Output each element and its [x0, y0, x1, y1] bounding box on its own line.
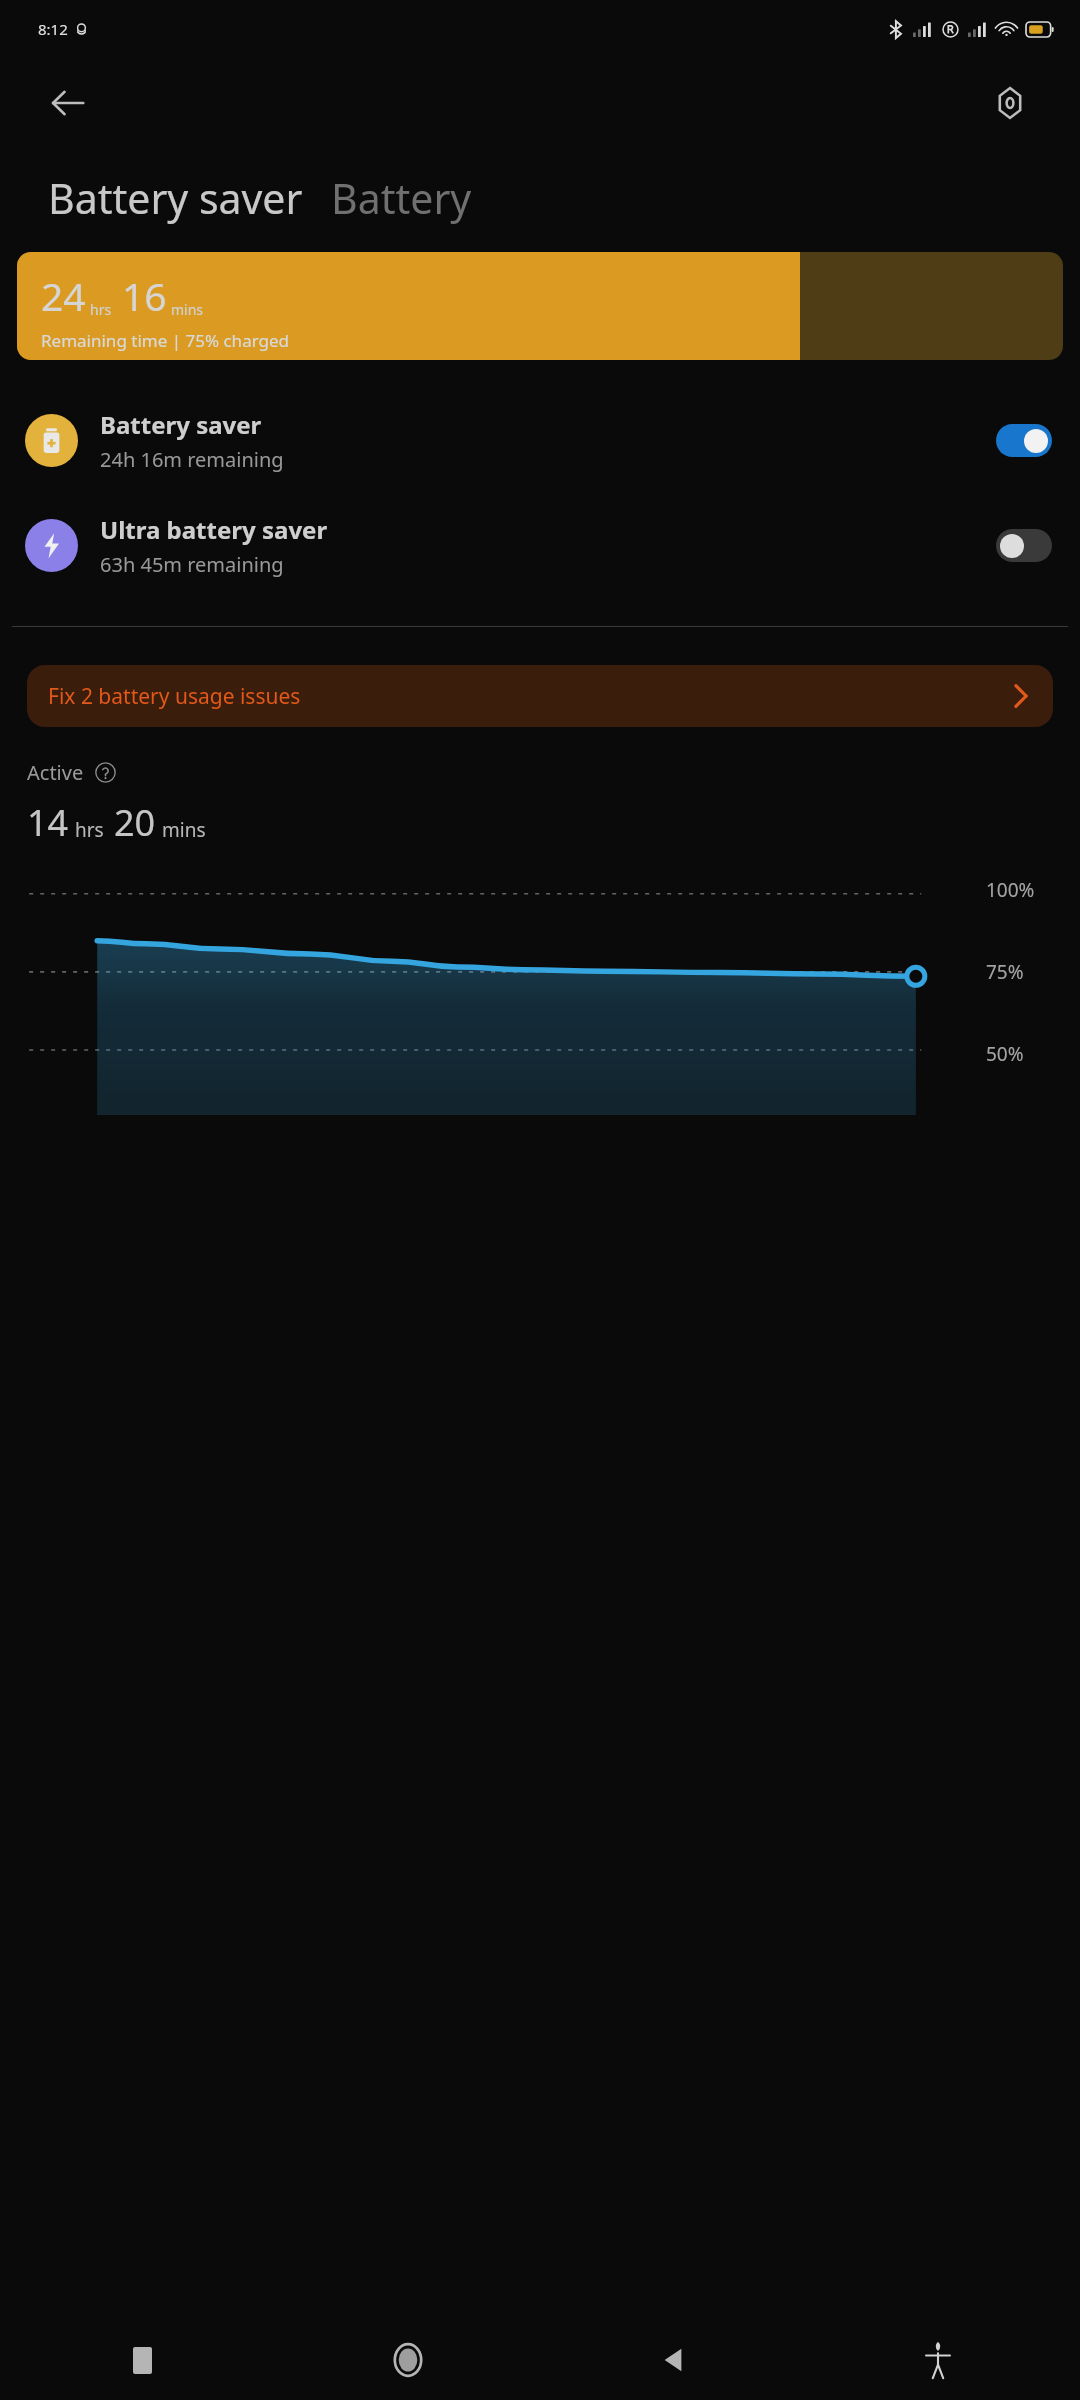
button[interactable]: Battery saver [48, 170, 303, 226]
staticText: Fix 2 battery usage issues [48, 682, 301, 711]
staticText: Battery [331, 170, 472, 226]
button[interactable]: Back [40, 75, 96, 131]
staticText: hrs [90, 300, 112, 319]
staticText: 16 [122, 269, 167, 322]
staticText: 14 [27, 798, 69, 847]
button[interactable] [996, 424, 1052, 457]
button[interactable]: Home [275, 2320, 540, 2400]
button[interactable]: Back [540, 2320, 805, 2400]
staticText: hrs [75, 817, 104, 843]
button[interactable]: Active [27, 759, 116, 786]
staticText: mins [162, 817, 206, 843]
staticText: Battery saver [48, 170, 303, 226]
staticText: 50% [986, 1041, 1024, 1067]
staticText: 8:12 [38, 19, 68, 39]
button[interactable]: Battery saver [0, 402, 1080, 479]
staticText: 75% [986, 959, 1024, 985]
button[interactable]: Ultra battery saver [0, 507, 1080, 584]
staticText: 100% [986, 877, 1035, 903]
button[interactable]: 24 [17, 252, 1063, 360]
button[interactable]: Recents [10, 2320, 275, 2400]
staticText: Battery saver [100, 408, 262, 441]
staticText: 20 [114, 798, 156, 847]
staticText: Active [27, 759, 84, 786]
staticText: mins [171, 300, 204, 319]
button[interactable] [996, 529, 1052, 562]
button[interactable]: Battery [331, 170, 472, 226]
staticText: Ultra battery saver [100, 513, 328, 546]
staticText: 24h 16m remaining [100, 446, 284, 473]
button[interactable]: Settings [982, 75, 1038, 131]
button[interactable]: Fix 2 battery usage issues [27, 665, 1053, 727]
staticText: Remaining time | 75% charged [41, 329, 290, 352]
staticText: 24 [41, 269, 86, 322]
staticText: 63h 45m remaining [100, 551, 284, 578]
button[interactable]: Accessibility [805, 2320, 1070, 2400]
